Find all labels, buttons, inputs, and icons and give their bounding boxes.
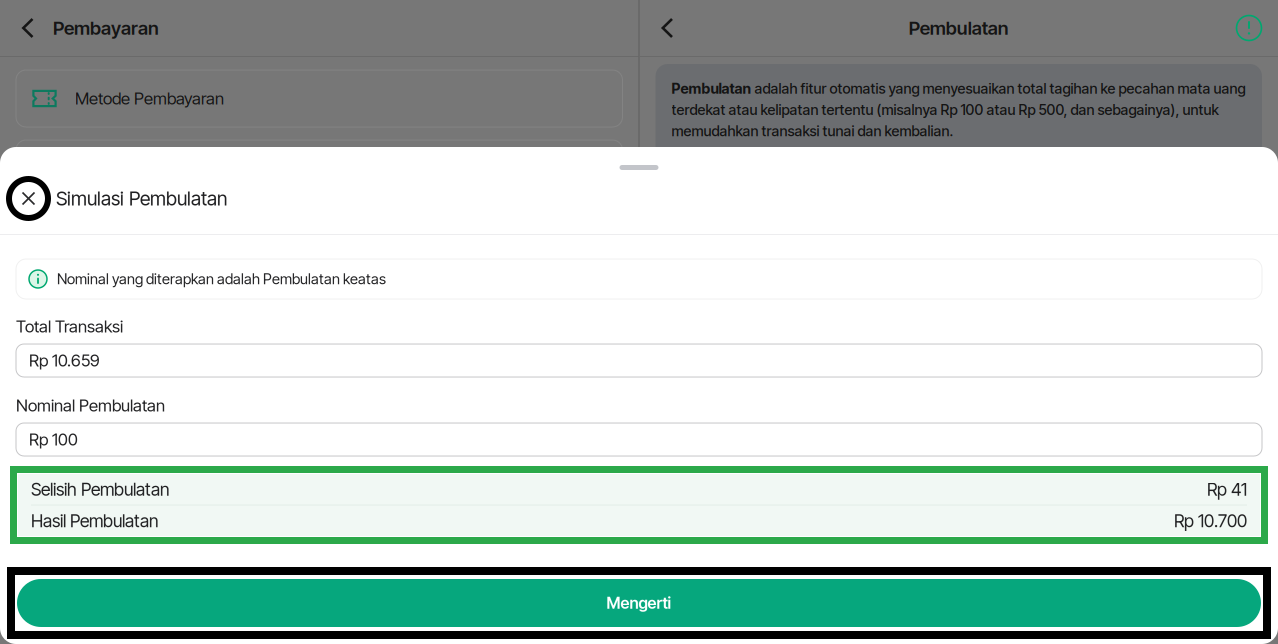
staticText: Pembayaran bbox=[53, 17, 159, 39]
staticText: Total Transaksi bbox=[16, 316, 123, 337]
button[interactable]: Back bbox=[652, 11, 682, 45]
staticText: Nominal Pembulatan bbox=[16, 395, 165, 416]
button[interactable]: Tutup bbox=[6, 176, 51, 221]
button[interactable]: Opsi pembayaran bbox=[0, 140, 638, 197]
button[interactable]: Informasi pembulatan bbox=[1232, 11, 1266, 45]
staticText: Metode Pembayaran bbox=[75, 88, 224, 109]
staticText: memudahkan transaksi tunai dan kembalian… bbox=[671, 122, 953, 140]
staticText: Pembulatan bbox=[909, 17, 1009, 39]
staticText: Rp 10.700 bbox=[1174, 510, 1247, 531]
staticText: Selisih Pembulatan bbox=[31, 479, 169, 500]
staticText: terdekat atau kelipatan tertentu (misaln… bbox=[671, 101, 1218, 118]
staticText: Rp 10.659 bbox=[29, 350, 100, 371]
staticText: Hasil Pembulatan bbox=[31, 510, 158, 531]
button[interactable]: Back bbox=[13, 11, 43, 45]
button[interactable]: Metode Pembayaran bbox=[0, 70, 638, 127]
staticText: Nominal yang diterapkan adalah Pembulata… bbox=[57, 270, 386, 288]
staticText: Rp 100 bbox=[29, 429, 78, 450]
staticText: Simulasi Pembulatan bbox=[56, 187, 227, 210]
staticText: Rp 41 bbox=[1207, 479, 1247, 500]
staticText: Pembulatan adalah fitur otomatis yang me… bbox=[671, 80, 1245, 97]
staticText: Mengerti bbox=[606, 593, 671, 613]
button[interactable]: Mengerti bbox=[0, 567, 1278, 639]
